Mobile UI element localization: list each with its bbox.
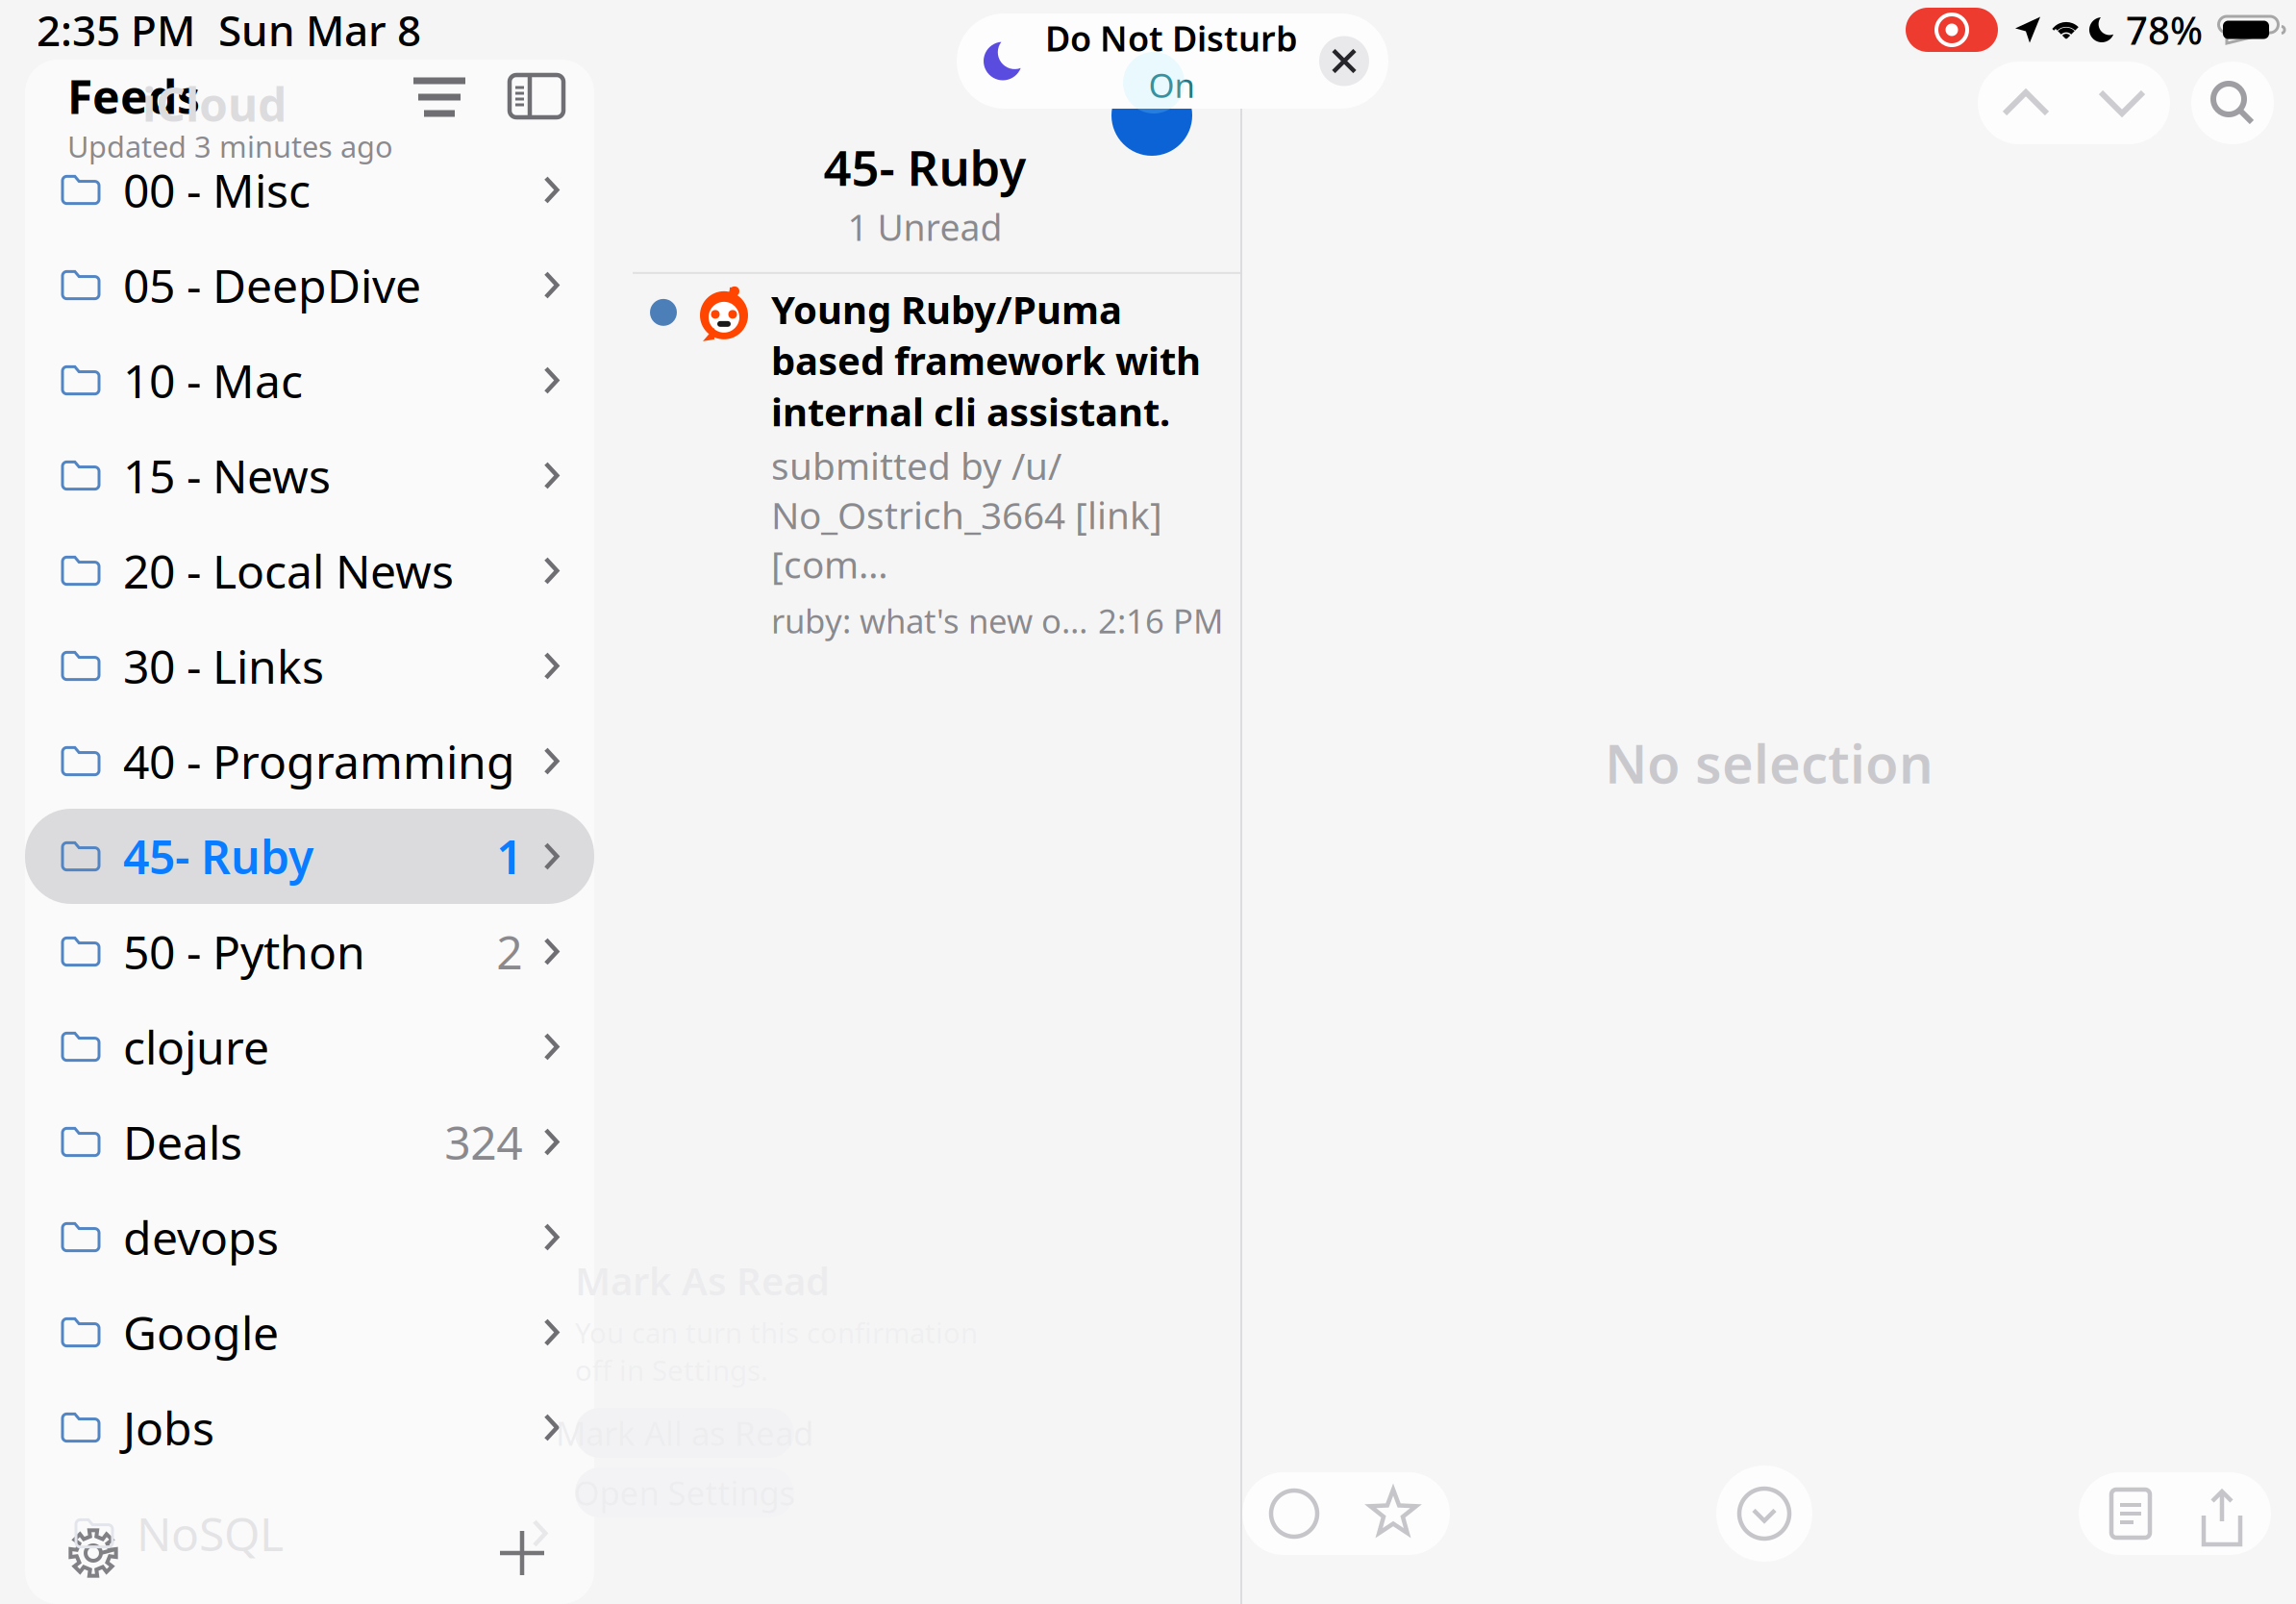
staticText: 30 - Links (123, 635, 324, 697)
staticText: Google (123, 1302, 279, 1363)
staticText: 10 - Mac (123, 350, 303, 411)
button[interactable]: Layout (481, 65, 569, 117)
staticText: 05 - DeepDive (123, 254, 421, 316)
button[interactable]: Jobs (25, 1380, 594, 1475)
button[interactable]: Star (1342, 1472, 1450, 1555)
button[interactable]: devops (25, 1190, 594, 1285)
staticText: Do Not Disturb (1045, 15, 1298, 61)
staticText: 40 - Programming (123, 730, 515, 792)
button[interactable]: 00 - Misc (25, 142, 594, 238)
staticText: ruby: what's new o… (771, 598, 1087, 643)
staticText: Deals (123, 1111, 242, 1173)
staticText: NoSQL (137, 1503, 284, 1564)
button[interactable]: Add feed (483, 1514, 562, 1592)
staticText: 1 (496, 826, 522, 887)
staticText: Young Ruby/Puma based framework with int… (771, 284, 1201, 437)
button[interactable]: 40 - Programming (25, 714, 594, 809)
staticText: submitted by /u/ No_Ostrich_3664 [link] … (771, 441, 1162, 589)
button[interactable]: Deals (25, 1094, 594, 1190)
staticText: Feeds (67, 65, 200, 127)
button[interactable]: Google (25, 1285, 594, 1380)
button[interactable]: 15 - News (25, 428, 594, 523)
staticText: Mark All as Read (556, 1411, 813, 1455)
staticText: Jobs (123, 1397, 214, 1458)
button[interactable]: Filter (398, 65, 481, 117)
staticText: No selection (1605, 727, 1934, 798)
staticText: Sun Mar 8 (218, 2, 421, 58)
staticText: 15 - News (123, 445, 331, 506)
button[interactable]: 50 - Python (25, 904, 594, 999)
staticText: 00 - Misc (123, 159, 311, 221)
staticText: devops (123, 1206, 279, 1268)
staticText: 324 (444, 1111, 522, 1173)
button[interactable]: 30 - Links (25, 618, 594, 714)
button[interactable]: clojure (25, 999, 594, 1094)
button[interactable]: Settings (52, 1512, 135, 1594)
staticText: clojure (123, 1016, 269, 1077)
button[interactable]: Dismiss Do Not Disturb (1319, 36, 1388, 86)
staticText: 1 Unread (848, 203, 1002, 251)
staticText: Updated 3 minutes ago (67, 127, 393, 166)
button[interactable]: Next article (2074, 62, 2170, 144)
staticText: On (1148, 63, 1195, 107)
staticText: 2:16 PM (1098, 598, 1223, 643)
staticText: 2:35 PM (37, 2, 195, 58)
staticText: 78% (2126, 4, 2203, 55)
staticText: 20 - Local News (123, 540, 454, 601)
staticText: 50 - Python (123, 921, 365, 982)
button[interactable]: 05 - DeepDive (25, 238, 594, 333)
staticText: iCloud (142, 73, 287, 134)
staticText: Mark As Read (575, 1255, 830, 1306)
button[interactable]: Reader view (2079, 1472, 2177, 1555)
staticText: 2 (496, 921, 522, 982)
button[interactable]: Next unread (1716, 1466, 1812, 1562)
button[interactable]: Share (2177, 1472, 2271, 1555)
button[interactable]: Previous article (1978, 62, 2074, 144)
staticText: 45- Ruby (123, 826, 313, 887)
button[interactable]: 20 - Local News (25, 523, 594, 618)
button[interactable]: 10 - Mac (25, 333, 594, 428)
button[interactable]: Mark as read (1242, 1472, 1342, 1555)
staticText: 45- Ruby (824, 135, 1026, 199)
button[interactable]: Young Ruby/Puma based framework with int… (627, 274, 1223, 668)
button[interactable]: 45- Ruby (25, 809, 594, 904)
button[interactable]: Search (2191, 62, 2274, 144)
